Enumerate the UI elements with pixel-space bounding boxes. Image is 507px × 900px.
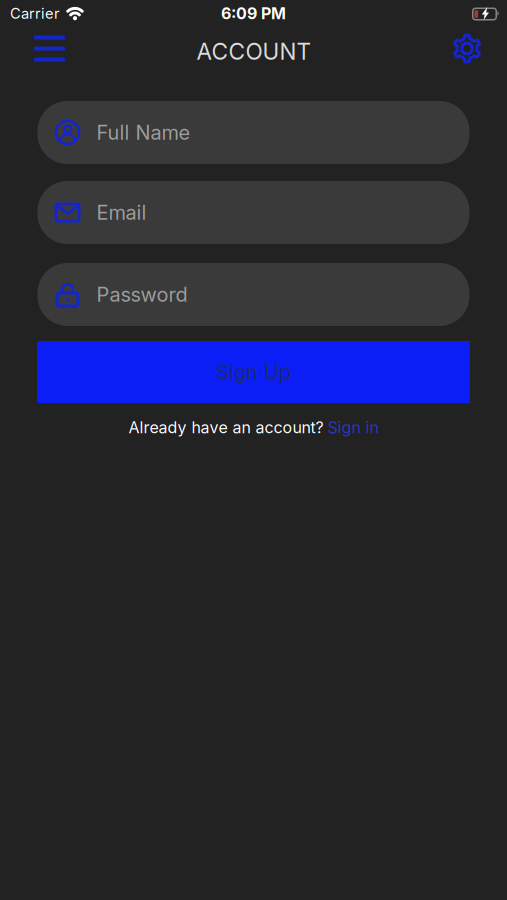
staticText: Carrier xyxy=(10,5,60,22)
staticText: Email xyxy=(96,201,146,224)
staticText: Already have an account? xyxy=(128,418,323,437)
button[interactable] xyxy=(452,33,507,69)
staticText: Password xyxy=(96,283,187,306)
button[interactable]: Full Name xyxy=(37,101,469,164)
staticText: Full Name xyxy=(96,121,190,144)
staticText: Sign in xyxy=(327,418,378,437)
button[interactable]: Sign Up xyxy=(37,341,470,403)
button[interactable] xyxy=(0,35,65,67)
button[interactable]: Email xyxy=(37,181,469,244)
staticText: ACCOUNT xyxy=(196,38,310,65)
button[interactable]: Sign in xyxy=(327,418,378,437)
button[interactable]: Password xyxy=(37,263,469,326)
staticText: Sign Up xyxy=(216,360,291,384)
staticText: 6:09 PM xyxy=(221,4,286,23)
